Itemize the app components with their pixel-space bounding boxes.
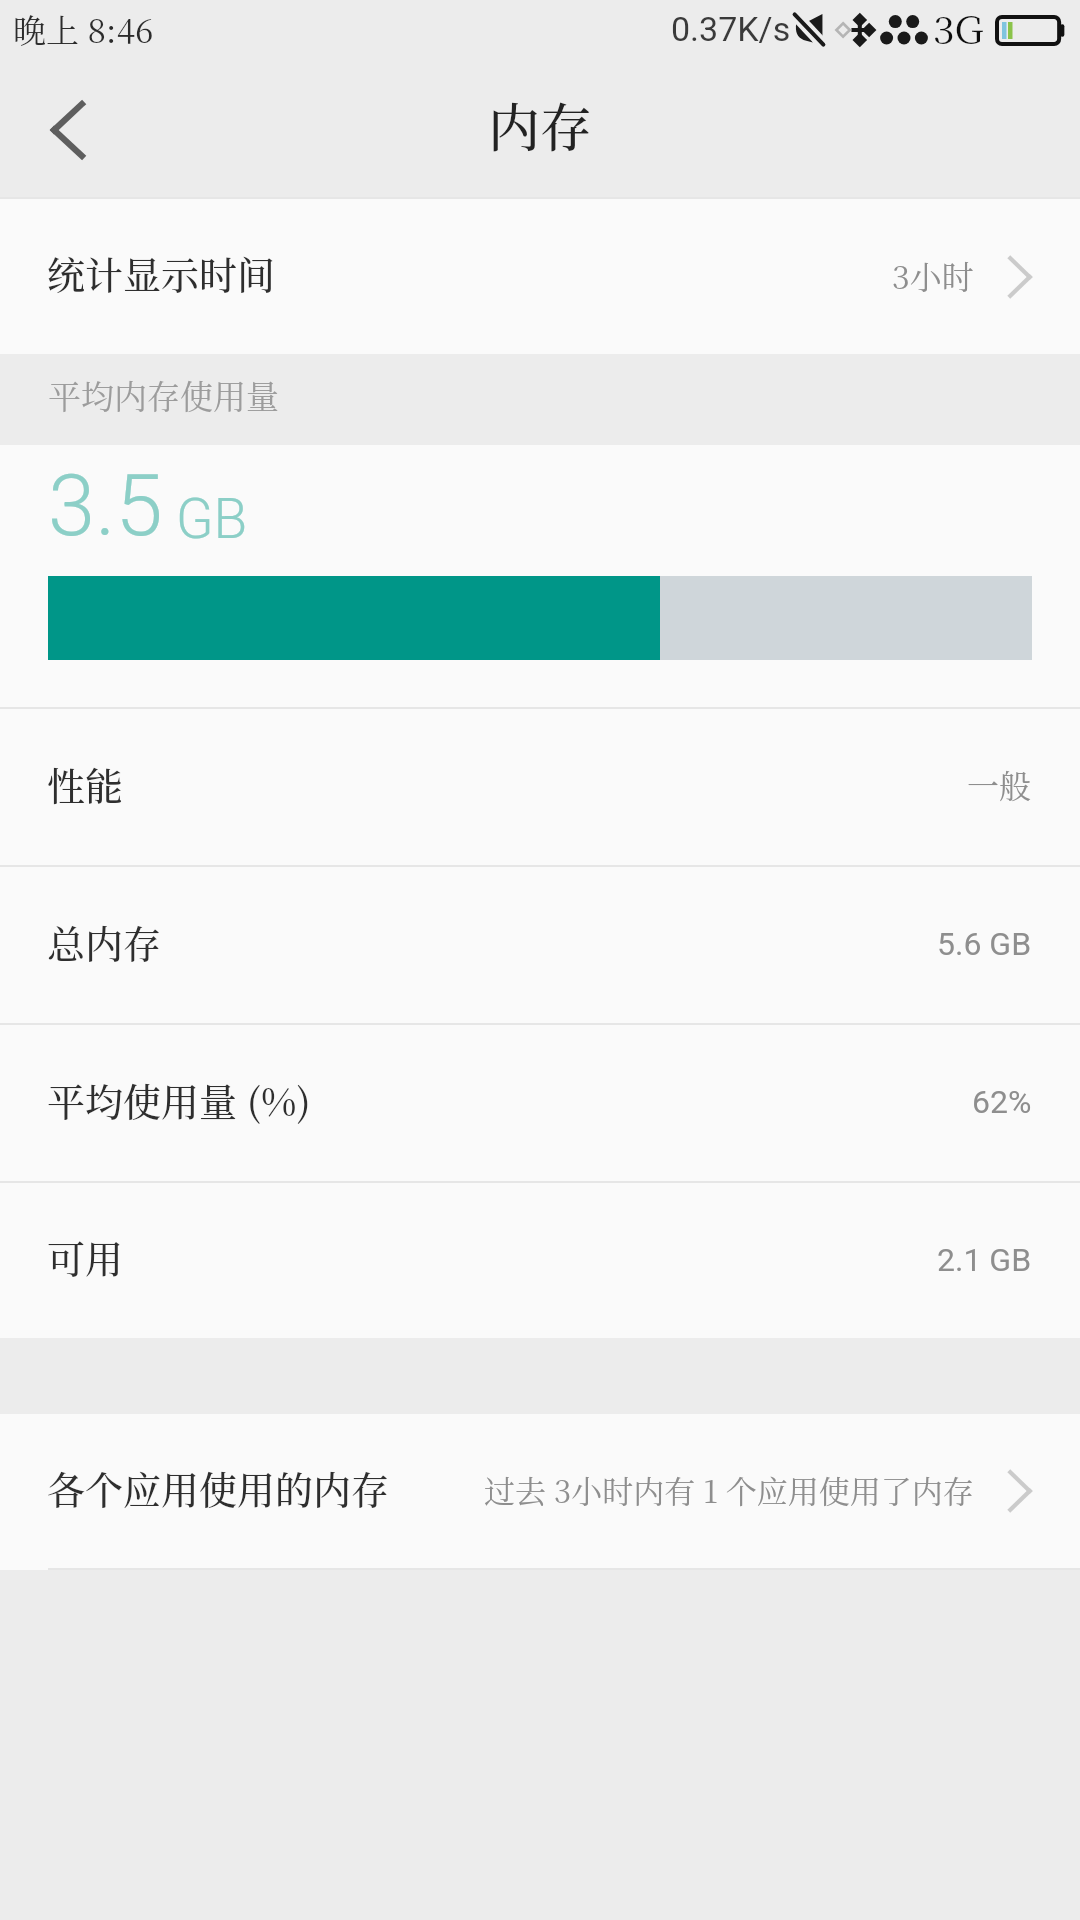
staticText: 可用 [47, 1229, 124, 1284]
staticText: 性能 [47, 756, 124, 811]
staticText: GB [176, 487, 248, 551]
staticText: 62% [972, 1083, 1032, 1121]
staticText: 3小时 [892, 252, 974, 298]
button[interactable]: 总内存 [0, 867, 1080, 1023]
button[interactable]: Back [20, 82, 116, 178]
button[interactable]: 可用 [0, 1183, 1080, 1338]
staticText: 总内存 [47, 914, 162, 969]
staticText: 3.5 [48, 456, 163, 556]
staticText: 3G [933, 0, 984, 55]
staticText: 晚上 8:46 [13, 5, 154, 52]
staticText: 过去 3小时内有 1 个应用使用了内存 [484, 1467, 974, 1512]
staticText: 一般 [967, 761, 1032, 807]
staticText: 各个应用使用的内存 [47, 1460, 390, 1515]
button[interactable]: 平均使用量 (%) [0, 1025, 1080, 1181]
button[interactable]: 性能 [0, 709, 1080, 865]
button[interactable]: 各个应用使用的内存 [0, 1414, 1080, 1568]
staticText: 5.6 GB [937, 925, 1032, 963]
staticText: 0.37K/s [671, 9, 791, 49]
other: Silent mode [793, 12, 825, 46]
staticText: 平均使用量 (%) [47, 1072, 311, 1127]
staticText: 2.1 GB [937, 1241, 1032, 1279]
staticText: 内存 [488, 87, 593, 162]
staticText: 平均内存使用量 [48, 371, 279, 418]
staticText: 统计显示时间 [47, 245, 276, 300]
button[interactable]: 统计显示时间 [0, 199, 1080, 354]
